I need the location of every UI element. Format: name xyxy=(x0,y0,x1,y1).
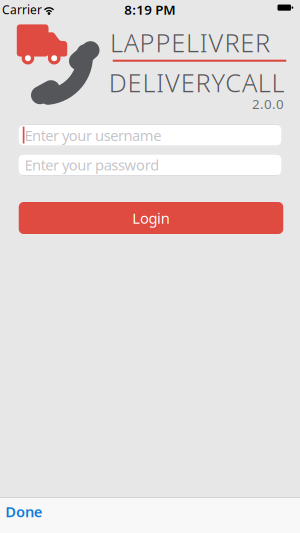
staticText: Done xyxy=(5,502,43,521)
button[interactable]: Enter your password xyxy=(17,154,282,176)
button[interactable]: Enter your username xyxy=(17,124,282,146)
staticText: LAPPELIVRER xyxy=(110,26,270,59)
staticText: Carrier xyxy=(2,2,42,18)
button[interactable]: Login xyxy=(19,202,283,234)
staticText: Enter your username xyxy=(24,125,161,145)
staticText: Enter your password xyxy=(24,155,159,175)
staticText: Login xyxy=(132,208,170,228)
staticText: DELIVERYCALL xyxy=(109,65,285,99)
staticText: 2.0.0 xyxy=(252,95,284,113)
button[interactable]: Done xyxy=(1,499,47,523)
staticText: 8:19 PM xyxy=(124,1,175,18)
